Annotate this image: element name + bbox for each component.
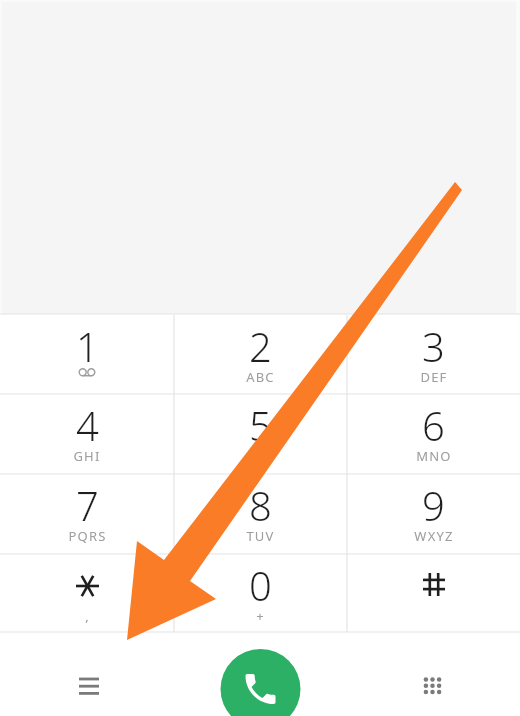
staticText: 5 [249,398,272,452]
staticText: 1 [76,319,99,373]
button[interactable]: 8 [174,474,347,554]
staticText: 0 [249,558,272,612]
staticText: MNO [416,447,452,465]
button[interactable]: Dialpad [347,632,520,716]
staticText: , [85,607,90,625]
staticText: WXYZ [414,527,454,545]
staticText: 7 [76,478,99,532]
button[interactable]: 0 [174,554,347,632]
staticText: 6 [422,398,445,452]
button[interactable]: 4 [0,394,174,474]
staticText: GHI [73,447,101,465]
button[interactable]: 3 [347,315,520,394]
staticText: + [256,607,265,625]
button[interactable]: 5 [174,394,347,474]
staticText: 2 [249,319,272,373]
button[interactable]: , [0,554,174,632]
button[interactable]: 2 [174,315,347,394]
staticText: 4 [76,398,99,452]
button[interactable]: Menu [0,632,174,716]
staticText: TUV [246,527,275,545]
staticText: JKL [249,447,272,465]
staticText: PQRS [68,527,107,545]
button[interactable] [347,554,520,632]
staticText: DEF [420,368,448,386]
button[interactable]: Call [174,632,347,716]
staticText: 3 [422,319,445,373]
staticText: ABC [246,368,275,386]
button[interactable]: 9 [347,474,520,554]
button[interactable]: 7 [0,474,174,554]
staticText: 8 [249,478,272,532]
staticText: 9 [422,478,445,532]
button[interactable]: 6 [347,394,520,474]
button[interactable]: 1 [0,315,174,394]
